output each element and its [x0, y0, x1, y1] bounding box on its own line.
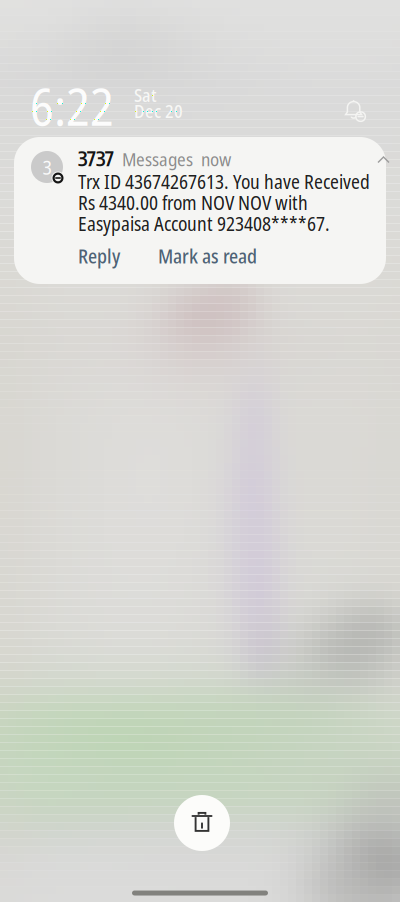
staticText: 3737	[78, 146, 114, 170]
button[interactable]: Notification settings	[343, 99, 365, 121]
staticText: Rs 4340.00 from NOV NOV with	[78, 189, 308, 216]
staticText: Reply	[78, 243, 120, 269]
staticText: 6:22	[30, 71, 114, 140]
staticText: Easypaisa Account 923408****67.	[78, 210, 330, 237]
staticText: Dec 20	[134, 99, 183, 123]
staticText: Mark as read	[158, 243, 257, 269]
button[interactable]: 3	[14, 137, 386, 284]
staticText: Sat	[134, 83, 157, 107]
staticText: 3	[42, 153, 51, 181]
button[interactable]: Mark as read	[158, 246, 257, 266]
button[interactable]: Clear all notifications	[174, 795, 230, 851]
button[interactable]: Reply	[78, 246, 120, 266]
staticText: Messages now	[114, 146, 231, 172]
staticText: Trx ID 43674267613. You have Received	[78, 168, 370, 195]
